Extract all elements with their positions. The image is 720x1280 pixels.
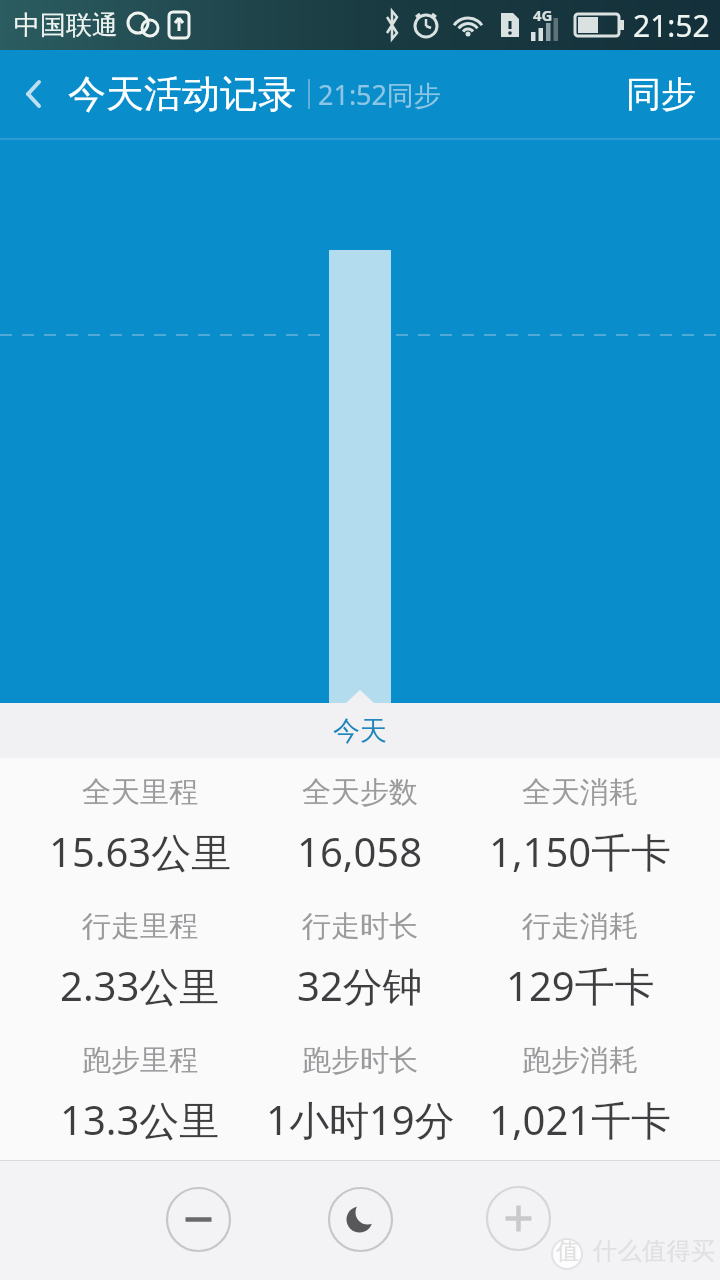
button[interactable] xyxy=(0,50,68,138)
staticText: 今天活动记录 xyxy=(68,70,296,118)
staticText: 32分钟 xyxy=(297,958,423,1013)
staticText: 今天 xyxy=(333,714,387,748)
staticText: 2.33公里 xyxy=(60,958,220,1013)
staticText: 跑步里程 xyxy=(82,1042,198,1079)
staticText: 1,150千卡 xyxy=(489,824,672,879)
staticText: 行走里程 xyxy=(82,908,198,945)
staticText: 行走消耗 xyxy=(522,908,638,945)
button[interactable]: 同步 xyxy=(602,50,720,138)
staticText: 129千卡 xyxy=(506,958,655,1013)
staticText: 同步 xyxy=(626,72,696,116)
staticText: 跑步消耗 xyxy=(522,1042,638,1079)
staticText: 什么值得买 xyxy=(593,1236,716,1266)
button[interactable] xyxy=(486,1186,551,1251)
staticText: 值 xyxy=(556,1237,579,1266)
staticText: 中国联通 xyxy=(14,9,118,42)
staticText: 行走时长 xyxy=(302,908,418,945)
staticText: 4G xyxy=(533,5,553,25)
staticText: 21:52同步 xyxy=(318,76,442,113)
staticText: 跑步时长 xyxy=(302,1042,418,1079)
staticText: 1,021千卡 xyxy=(489,1092,672,1147)
staticText: 全天里程 xyxy=(82,774,198,811)
staticText: 1小时19分 xyxy=(266,1092,455,1147)
staticText: 15.63公里 xyxy=(49,824,232,879)
staticText: 16,058 xyxy=(297,824,423,878)
staticText: 全天步数 xyxy=(302,774,418,811)
button[interactable] xyxy=(166,1187,231,1252)
button[interactable] xyxy=(328,1187,393,1252)
staticText: 13.3公里 xyxy=(60,1092,220,1147)
staticText: 21:52 xyxy=(633,5,710,46)
staticText: 全天消耗 xyxy=(522,774,638,811)
